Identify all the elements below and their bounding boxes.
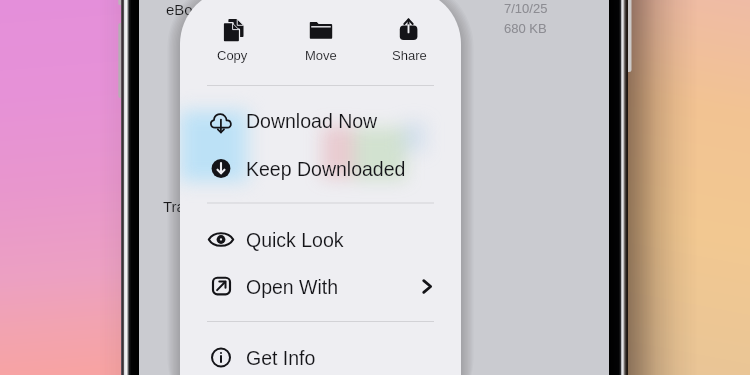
staticText: Quick Look xyxy=(246,229,344,251)
staticText: 7/10/25 xyxy=(504,1,548,16)
button[interactable]: Get Info xyxy=(180,334,461,375)
staticText: Keep Downloaded xyxy=(246,158,406,180)
button[interactable]: Quick Look xyxy=(180,216,461,263)
staticText: Share xyxy=(392,48,427,63)
button[interactable]: Share xyxy=(365,0,454,70)
button[interactable]: Move xyxy=(276,0,365,70)
staticText: Download Now xyxy=(246,110,378,132)
staticText: Move xyxy=(305,48,337,63)
button[interactable]: Keep Downloaded xyxy=(180,145,461,192)
button[interactable]: Open With xyxy=(180,263,461,310)
staticText: eBooks xyxy=(166,1,217,18)
staticText: Get Info xyxy=(246,347,316,369)
staticText: 680 KB xyxy=(504,21,547,36)
button[interactable]: Copy xyxy=(188,0,277,70)
staticText: Travel xyxy=(163,198,205,215)
staticText: Open With xyxy=(246,276,339,298)
staticText: Copy xyxy=(217,48,248,63)
button[interactable]: Download Now xyxy=(180,97,461,144)
